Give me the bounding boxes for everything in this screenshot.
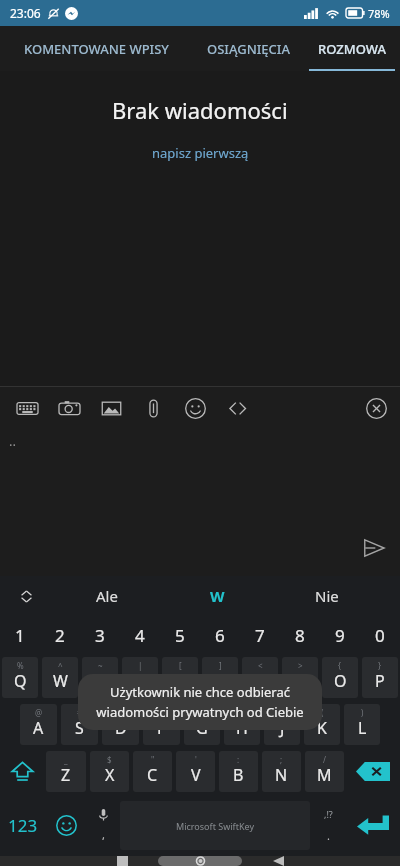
staticText: U [254,670,266,692]
button[interactable]: Camera [48,387,90,429]
button[interactable]: @ [20,704,57,745]
button[interactable]: Recents [86,856,158,866]
staticText: N [275,764,288,786]
button[interactable]: napisz pierwszą [146,142,255,164]
button[interactable]: + [224,704,260,745]
button[interactable]: Send [359,533,389,563]
staticText: P [375,670,385,692]
button[interactable]: 7 [240,616,280,654]
button[interactable]: Code [216,387,258,429]
button[interactable]: 5 [160,616,200,654]
button[interactable]: = [264,704,300,745]
button[interactable]: Close [358,390,394,426]
staticText: * [159,707,164,718]
staticText: ' [195,754,197,765]
button[interactable]: 2 [40,616,80,654]
button[interactable]: Enter [346,795,400,856]
button[interactable]: Nie [272,576,382,616]
button[interactable]: Voice input [86,795,120,856]
button[interactable]: : [219,751,258,792]
button[interactable]: ~ [82,657,118,698]
staticText: Ale [96,586,118,606]
staticText: 1 [15,624,25,647]
button[interactable]: ROZMOWA [304,26,400,71]
staticText: ROZMOWA [318,40,386,58]
button[interactable]: - [184,704,220,745]
staticText: 123 [8,814,38,837]
button[interactable]: | [122,657,158,698]
button[interactable]: [ [162,657,198,698]
button[interactable]: Expand suggestions [0,576,52,616]
button[interactable]: W [162,576,272,616]
button[interactable]: # [61,704,98,745]
staticText: M [317,764,332,786]
button[interactable]: ^ [42,657,78,698]
staticText: , [102,827,105,842]
staticText: KOMENTOWANE WPISY [24,40,169,58]
button[interactable]: Shift [0,748,44,795]
button[interactable]: ; [262,751,301,792]
staticText: X [105,764,115,786]
button[interactable]: Emoji [174,387,216,429]
staticText: Nie [315,586,339,606]
button[interactable]: _ [46,751,86,792]
button[interactable]: Home [158,856,242,866]
staticText: V [191,764,201,786]
button[interactable]: OSIĄGNIĘCIA [192,26,304,71]
button[interactable]: 8 [280,616,320,654]
button[interactable]: ' [176,751,215,792]
staticText: 5 [175,624,185,647]
staticText: - [201,707,204,718]
button[interactable]: > [282,657,318,698]
staticText: OSIĄGNIĘCIA [207,40,290,58]
staticText: 8 [295,624,305,647]
button[interactable]: / [305,751,344,792]
staticText: napisz pierwszą [152,144,249,162]
button[interactable]: Emoji [46,795,86,856]
button[interactable]: $ [90,751,129,792]
staticText: 6 [215,624,225,647]
staticText: E [96,670,105,692]
button[interactable]: ] [202,657,238,698]
staticText: 78% [368,6,390,21]
button[interactable]: { [322,657,358,698]
button[interactable]: Attach file [132,387,174,429]
button[interactable]: Ale [52,576,162,616]
staticText: @ [35,707,43,718]
staticText: # [77,707,83,718]
button[interactable]: % [2,657,38,698]
button[interactable]: 3 [80,616,120,654]
staticText: Microsoft SwiftKey [176,820,254,832]
button[interactable]: } [362,657,398,698]
button[interactable]: 0 [360,616,400,654]
staticText: ] [219,660,222,671]
staticText: K [317,717,327,739]
button[interactable]: 9 [320,616,360,654]
button[interactable]: Keyboard [6,387,48,429]
staticText: 2 [55,624,65,647]
button[interactable]: 6 [200,616,240,654]
staticText: | [138,660,143,671]
staticText: ; [280,754,283,765]
staticText: R [135,670,145,692]
button[interactable]: Backspace [346,748,400,795]
staticText: / [323,754,326,765]
staticText: J [280,717,285,739]
staticText: F [157,717,166,739]
button[interactable]: KOMENTOWANE WPISY [0,26,192,71]
button[interactable]: ( [304,704,340,745]
button[interactable]: Back [242,856,314,866]
staticText: { [338,660,342,671]
staticText: I [297,670,303,692]
button[interactable]: 123 [0,795,46,856]
button[interactable]: " [133,751,172,792]
button[interactable]: & [102,704,139,745]
button[interactable]: ,!? [310,795,346,856]
button[interactable]: Gallery [90,387,132,429]
button[interactable]: 1 [0,616,40,654]
button[interactable]: Microsoft SwiftKey [120,801,310,850]
button[interactable]: < [242,657,278,698]
button[interactable]: ) [344,704,380,745]
button[interactable]: 4 [120,616,160,654]
button[interactable]: * [143,704,180,745]
